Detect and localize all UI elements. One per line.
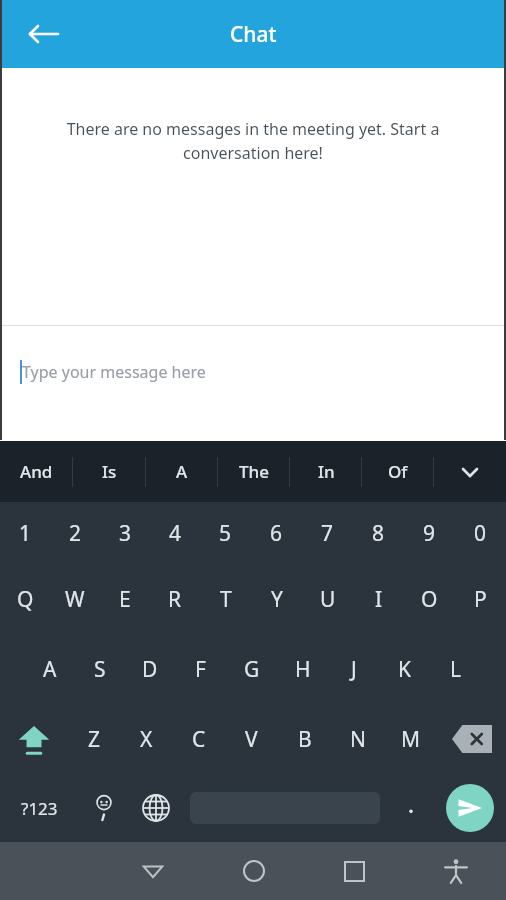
button[interactable]: 7 [302,502,353,564]
staticText: And [20,460,53,483]
staticText: 9 [423,519,436,548]
button[interactable]: Backspace [437,704,506,774]
button[interactable]: ?123 [0,774,78,842]
staticText: B [298,725,312,754]
button[interactable]: N [331,704,384,774]
button[interactable]: Shift [0,704,68,774]
staticText: J [351,655,357,684]
staticText: U [320,585,336,614]
staticText: I [375,585,383,614]
staticText: T [220,585,232,614]
staticText: G [244,655,260,684]
staticText: H [295,655,311,684]
button[interactable]: Type your message here [0,326,506,441]
button[interactable]: A [146,441,218,502]
button[interactable]: J [328,634,379,704]
button[interactable]: 0 [455,502,506,564]
staticText: O [421,585,438,614]
staticText: Of [388,460,408,483]
button[interactable]: L [430,634,481,704]
button[interactable]: X [120,704,172,774]
staticText: The [239,460,269,483]
button[interactable]: M [384,704,437,774]
staticText: W [65,585,85,614]
button[interactable]: Send [434,774,506,842]
staticText: F [195,655,206,684]
button[interactable]: Recent apps [304,842,405,900]
button[interactable]: The [218,441,290,502]
staticText: 8 [372,519,385,548]
button[interactable]: 5 [200,502,251,564]
button[interactable]: P [455,564,506,634]
button[interactable]: T [200,564,251,634]
button[interactable]: Back [102,842,203,900]
staticText: 3 [119,519,132,548]
button[interactable]: V [225,704,278,774]
button[interactable]: O [404,564,455,634]
button[interactable]: Y [251,564,302,634]
button[interactable]: R [150,564,200,634]
staticText: Chat [230,20,277,49]
button[interactable]: H [277,634,328,704]
staticText: L [450,655,462,684]
staticText: D [142,655,158,684]
staticText: ?123 [21,797,58,820]
staticText: Z [88,725,101,754]
button[interactable]: S [75,634,125,704]
button[interactable]: A [25,634,75,704]
staticText: 2 [69,519,82,548]
staticText: 6 [270,519,283,548]
button[interactable]: Emoji and comma [78,774,130,842]
button[interactable]: Q [0,564,50,634]
button[interactable]: In [290,441,362,502]
button[interactable]: F [175,634,226,704]
button[interactable]: Expand suggestions [434,441,506,502]
button[interactable]: And [0,441,73,502]
staticText: 5 [219,519,232,548]
staticText: S [94,655,106,684]
button[interactable]: Accessibility [405,842,506,900]
staticText: Y [271,585,283,614]
staticText: A [43,655,57,684]
staticText: C [192,725,206,754]
button[interactable]: Of [362,441,434,502]
button[interactable]: C [172,704,225,774]
button[interactable]: 8 [353,502,404,564]
button[interactable]: E [100,564,150,634]
staticText: 0 [474,519,487,548]
staticText: P [474,585,487,614]
staticText: 1 [19,519,32,548]
staticText: 7 [321,519,334,548]
button[interactable]: 3 [100,502,150,564]
button[interactable]: Is [73,441,146,502]
button[interactable]: 1 [0,502,50,564]
staticText: Type your message here [22,361,206,383]
button[interactable]: D [125,634,175,704]
staticText: M [401,725,421,754]
button[interactable]: Change language [130,774,182,842]
button[interactable]: I [353,564,404,634]
button[interactable]: G [226,634,277,704]
button[interactable]: 6 [251,502,302,564]
button[interactable]: B [278,704,331,774]
button[interactable]: W [50,564,100,634]
button[interactable]: U [302,564,353,634]
button[interactable] [388,774,434,842]
staticText: X [140,725,153,754]
staticText: R [168,585,182,614]
button[interactable]: 2 [50,502,100,564]
staticText: 4 [169,519,182,548]
staticText: There are no messages in the meeting yet… [34,118,472,164]
button[interactable]: 4 [150,502,200,564]
staticText: E [119,585,131,614]
button[interactable]: K [379,634,430,704]
staticText: Is [102,460,117,483]
staticText: A [176,460,188,483]
staticText: K [398,655,411,684]
staticText: In [318,460,335,483]
button[interactable]: Z [68,704,120,774]
button[interactable]: 9 [404,502,455,564]
button[interactable]: Home [203,842,304,900]
button[interactable]: Back [18,8,70,60]
